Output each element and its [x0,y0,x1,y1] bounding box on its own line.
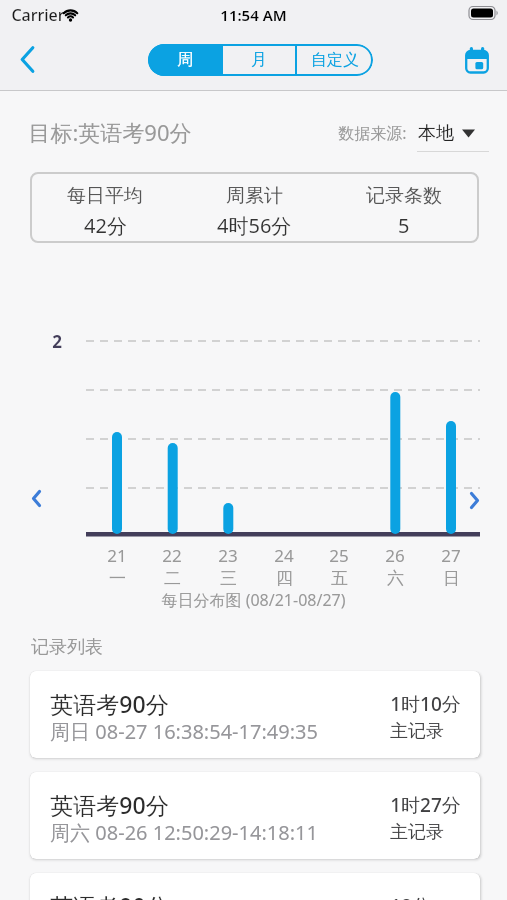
staticText: 26 [385,544,405,566]
staticText: 1时27分 [390,792,461,818]
staticText: 自定义 [311,50,359,70]
button[interactable]: 自定义 [297,44,373,76]
staticText: Carrier [11,4,65,26]
staticText: 二 [164,568,181,589]
staticText: 本地 [418,122,454,145]
button[interactable]: 本地 [415,117,490,153]
staticText: 4时56分 [217,212,292,239]
staticText: 每日平均 [67,184,143,208]
staticText: 周 [177,50,193,70]
button[interactable]: 月 [223,44,295,76]
button[interactable]: 英语考90分 [30,772,480,859]
staticText: 月 [251,50,267,70]
staticText: 记录条数 [366,184,442,208]
staticText: 27 [441,544,461,566]
staticText: 25 [329,544,349,566]
button[interactable] [18,480,54,516]
staticText: 英语考90分 [50,789,169,819]
staticText: 一 [109,568,126,589]
button[interactable] [5,37,49,81]
staticText: 23 [218,544,238,566]
staticText: 五 [331,568,348,589]
staticText: 三 [220,568,237,589]
staticText: 四 [276,568,293,589]
staticText: 数据来源: [338,122,407,144]
staticText: 周六 08-26 12:50:29-14:18:11 [50,819,318,846]
staticText: 11:54 AM [220,5,287,25]
staticText: 日 [443,568,460,589]
staticText: 目标:英语考90分 [28,117,192,145]
button[interactable]: 英语考90分 [30,873,480,900]
button[interactable] [455,38,499,82]
staticText: 24 [274,544,294,566]
staticText: 主记录 [390,720,444,743]
staticText: 每日分布图 (08/21-08/27) [161,589,346,611]
staticText: 六 [387,568,404,589]
staticText: 周累计 [226,184,283,208]
staticText: 2 [52,330,62,352]
staticText: 22 [162,544,182,566]
staticText: 记录列表 [31,636,103,658]
staticText: 18分 [390,893,431,900]
staticText: 周日 08-27 16:38:54-17:49:35 [50,718,318,745]
staticText: 主记录 [390,821,444,844]
staticText: 42分 [84,212,127,239]
button[interactable] [456,482,492,518]
staticText: 1时10分 [390,691,461,717]
button[interactable]: 周 [148,44,221,76]
staticText: 5 [398,212,410,239]
staticText: 英语考90分 [50,688,169,718]
staticText: 21 [107,544,127,566]
staticText: 英语考90分 [50,890,169,900]
button[interactable]: 英语考90分 [30,671,480,758]
